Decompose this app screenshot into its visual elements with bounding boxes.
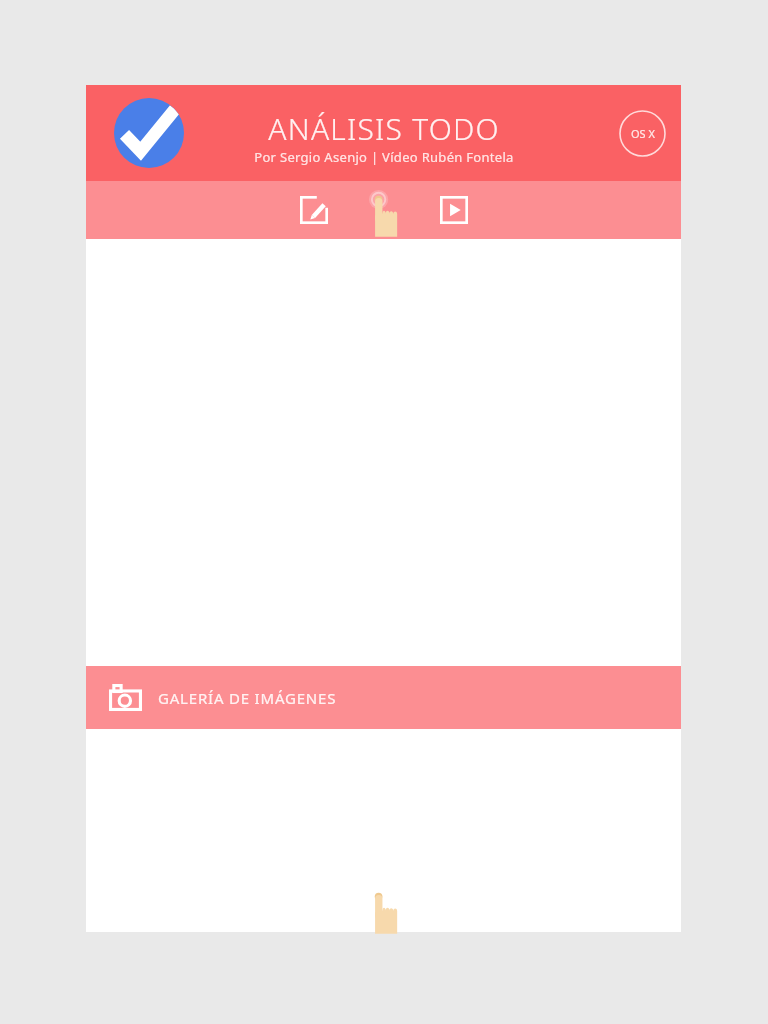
button[interactable]: ANÁLISIS TODO — [268, 108, 500, 148]
staticText: ANÁLISIS TODO — [268, 108, 500, 148]
button[interactable]: OS X — [619, 110, 666, 157]
staticText: GALERÍA DE IMÁGENES — [158, 688, 337, 708]
staticText: Por Sergio Asenjo | Vídeo Rubén Fontela — [254, 148, 514, 166]
button[interactable]: Edit — [300, 196, 328, 224]
button[interactable]: Play video — [440, 196, 468, 224]
button[interactable]: GALERÍA DE IMÁGENES — [86, 666, 681, 729]
staticText: OS X — [631, 126, 655, 141]
button[interactable]: Analisis Todo logo — [114, 98, 184, 168]
